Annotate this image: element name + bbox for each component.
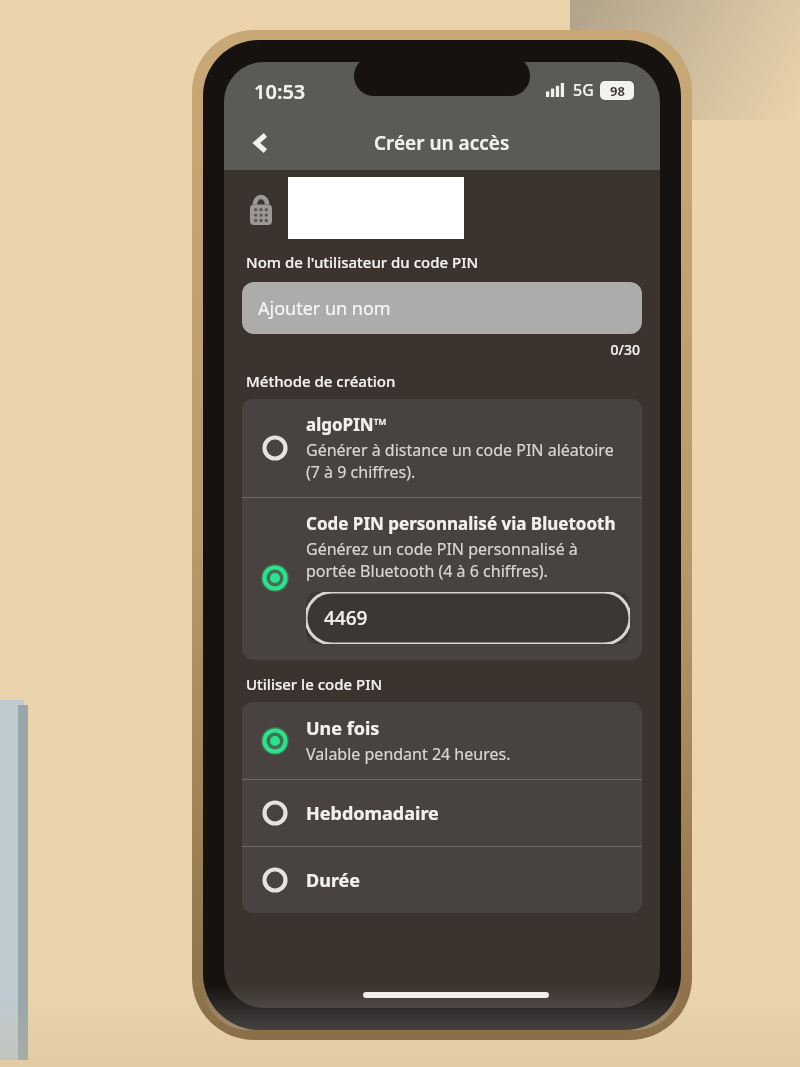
staticText: 10:53 [254, 78, 306, 105]
staticText: Utiliser le code PIN [246, 674, 383, 694]
staticText: Créer un accès [374, 130, 510, 156]
staticText: Générez un code PIN personnalisé à porté… [306, 538, 630, 582]
button[interactable]: Ajouter un nom [242, 282, 642, 334]
button[interactable]: Une fois [242, 702, 642, 779]
staticText: algoPIN™ [306, 413, 387, 436]
staticText: 98 [610, 82, 625, 100]
button[interactable]: algoPIN™ [242, 399, 642, 497]
staticText: 0/30 [224, 340, 640, 359]
staticText: Méthode de création [246, 371, 396, 391]
button[interactable]: 4469 [306, 592, 630, 644]
staticText: Valable pendant 24 heures. [306, 743, 511, 765]
staticText: Code PIN personnalisé via Bluetooth [306, 512, 616, 535]
button[interactable]: Back [238, 120, 284, 166]
staticText: Nom de l'utilisateur du code PIN [246, 252, 479, 272]
button[interactable]: Durée [242, 847, 642, 913]
staticText: Une fois [306, 716, 380, 741]
button[interactable]: Hebdomadaire [242, 780, 642, 846]
staticText: 4469 [324, 605, 368, 631]
staticText: Durée [306, 868, 361, 893]
staticText: Générer à distance un code PIN aléatoire… [306, 439, 630, 483]
staticText: Hebdomadaire [306, 801, 439, 826]
staticText: Ajouter un nom [258, 296, 391, 321]
button[interactable]: Code PIN personnalisé via Bluetooth [242, 498, 642, 660]
staticText: 5G [573, 79, 594, 101]
